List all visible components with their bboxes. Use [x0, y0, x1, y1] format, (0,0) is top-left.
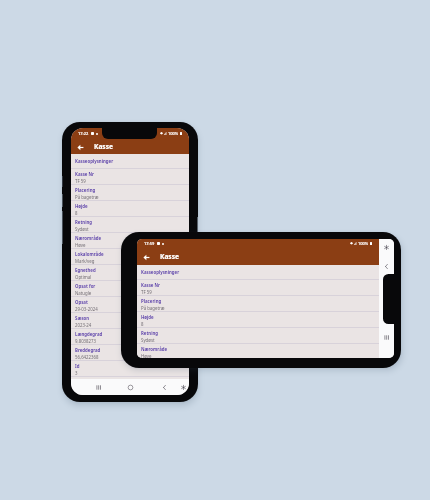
button[interactable]: Egnethed — [71, 265, 189, 281]
staticText: TF 59 — [141, 289, 152, 295]
staticText: Sydøst — [141, 337, 155, 343]
button[interactable]: Id — [71, 361, 189, 377]
staticText: 8 — [141, 321, 144, 327]
button[interactable]: Nærområde — [71, 233, 189, 249]
button[interactable]: Placering — [71, 185, 189, 201]
staticText: På bagetræ — [141, 305, 165, 311]
button[interactable]: Længdegrad — [71, 329, 189, 345]
staticText: Placering — [75, 187, 96, 193]
button[interactable]: Recents — [381, 332, 392, 343]
button[interactable]: Back — [71, 139, 189, 154]
button[interactable]: Opsat — [71, 297, 189, 313]
button[interactable]: Nærområde — [137, 344, 379, 358]
staticText: Kasse Nr — [75, 171, 95, 177]
staticText: 100% — [168, 131, 179, 136]
staticText: 100% — [358, 241, 369, 246]
staticText: Sydøst — [75, 226, 89, 232]
staticText: 17:22 — [78, 131, 89, 136]
staticText: Længdegrad — [75, 331, 103, 337]
button[interactable]: Recents — [93, 382, 104, 393]
staticText: Kasse Nr — [141, 282, 161, 288]
button[interactable]: Home — [125, 382, 136, 393]
staticText: 8 — [75, 210, 78, 216]
button[interactable]: Breddegrad — [71, 345, 189, 361]
staticText: Nærområde — [75, 235, 102, 241]
staticText: 56,6422368 — [75, 354, 99, 360]
button[interactable]: Lokalområde — [71, 249, 189, 265]
button[interactable]: Back — [75, 142, 85, 152]
staticText: TF 59 — [75, 178, 86, 184]
staticText: Opsat for — [75, 283, 96, 289]
staticText: Kasseoplysninger — [75, 158, 114, 164]
button[interactable]: Accessibility — [178, 382, 189, 393]
button[interactable]: Kasse Nr — [71, 169, 189, 185]
staticText: 3 — [75, 370, 78, 376]
button[interactable]: Sæson — [71, 313, 189, 329]
staticText: 2023-24 — [75, 322, 92, 328]
staticText: Retning — [75, 219, 93, 225]
button[interactable]: Placering — [137, 296, 379, 312]
staticText: Kasseoplysninger — [141, 269, 180, 275]
button[interactable]: Retning — [71, 217, 189, 233]
button[interactable]: Højde — [137, 312, 379, 328]
staticText: Retning — [141, 330, 159, 336]
button[interactable]: Back — [137, 248, 379, 265]
button[interactable]: Kasseoplysninger — [71, 154, 189, 168]
button[interactable]: Kasseoplysninger — [137, 265, 379, 279]
staticText: Høve — [75, 242, 86, 248]
staticText: Breddegrad — [75, 347, 101, 353]
button[interactable]: Back — [381, 261, 392, 272]
staticText: På bagetræ — [75, 194, 99, 200]
staticText: Natugle — [75, 290, 92, 296]
staticText: Egnethed — [75, 267, 96, 273]
staticText: Højde — [141, 314, 154, 320]
button[interactable]: Opsat for — [71, 281, 189, 297]
staticText: Optimal — [75, 274, 92, 280]
staticText: Kasse — [160, 252, 179, 261]
button[interactable]: Back — [141, 252, 151, 262]
staticText: Mark/veg — [75, 258, 95, 264]
staticText: Id — [75, 363, 80, 369]
staticText: 29-03-2024 — [75, 306, 98, 312]
staticText: Sæson — [75, 315, 90, 321]
staticText: Opsat — [75, 299, 88, 305]
staticText: Højde — [75, 203, 88, 209]
staticText: 9,8038273 — [75, 338, 97, 344]
button[interactable]: Accessibility — [381, 242, 392, 253]
staticText: Nærområde — [141, 346, 168, 352]
button[interactable]: Retning — [137, 328, 379, 344]
staticText: Kasse — [94, 142, 113, 151]
staticText: Høve — [141, 353, 152, 358]
button[interactable]: Kasse Nr — [137, 280, 379, 296]
staticText: Lokalområde — [75, 251, 104, 257]
staticText: Placering — [141, 298, 162, 304]
staticText: 17:59 — [144, 241, 155, 246]
button[interactable]: Back — [159, 382, 170, 393]
button[interactable]: Højde — [71, 201, 189, 217]
